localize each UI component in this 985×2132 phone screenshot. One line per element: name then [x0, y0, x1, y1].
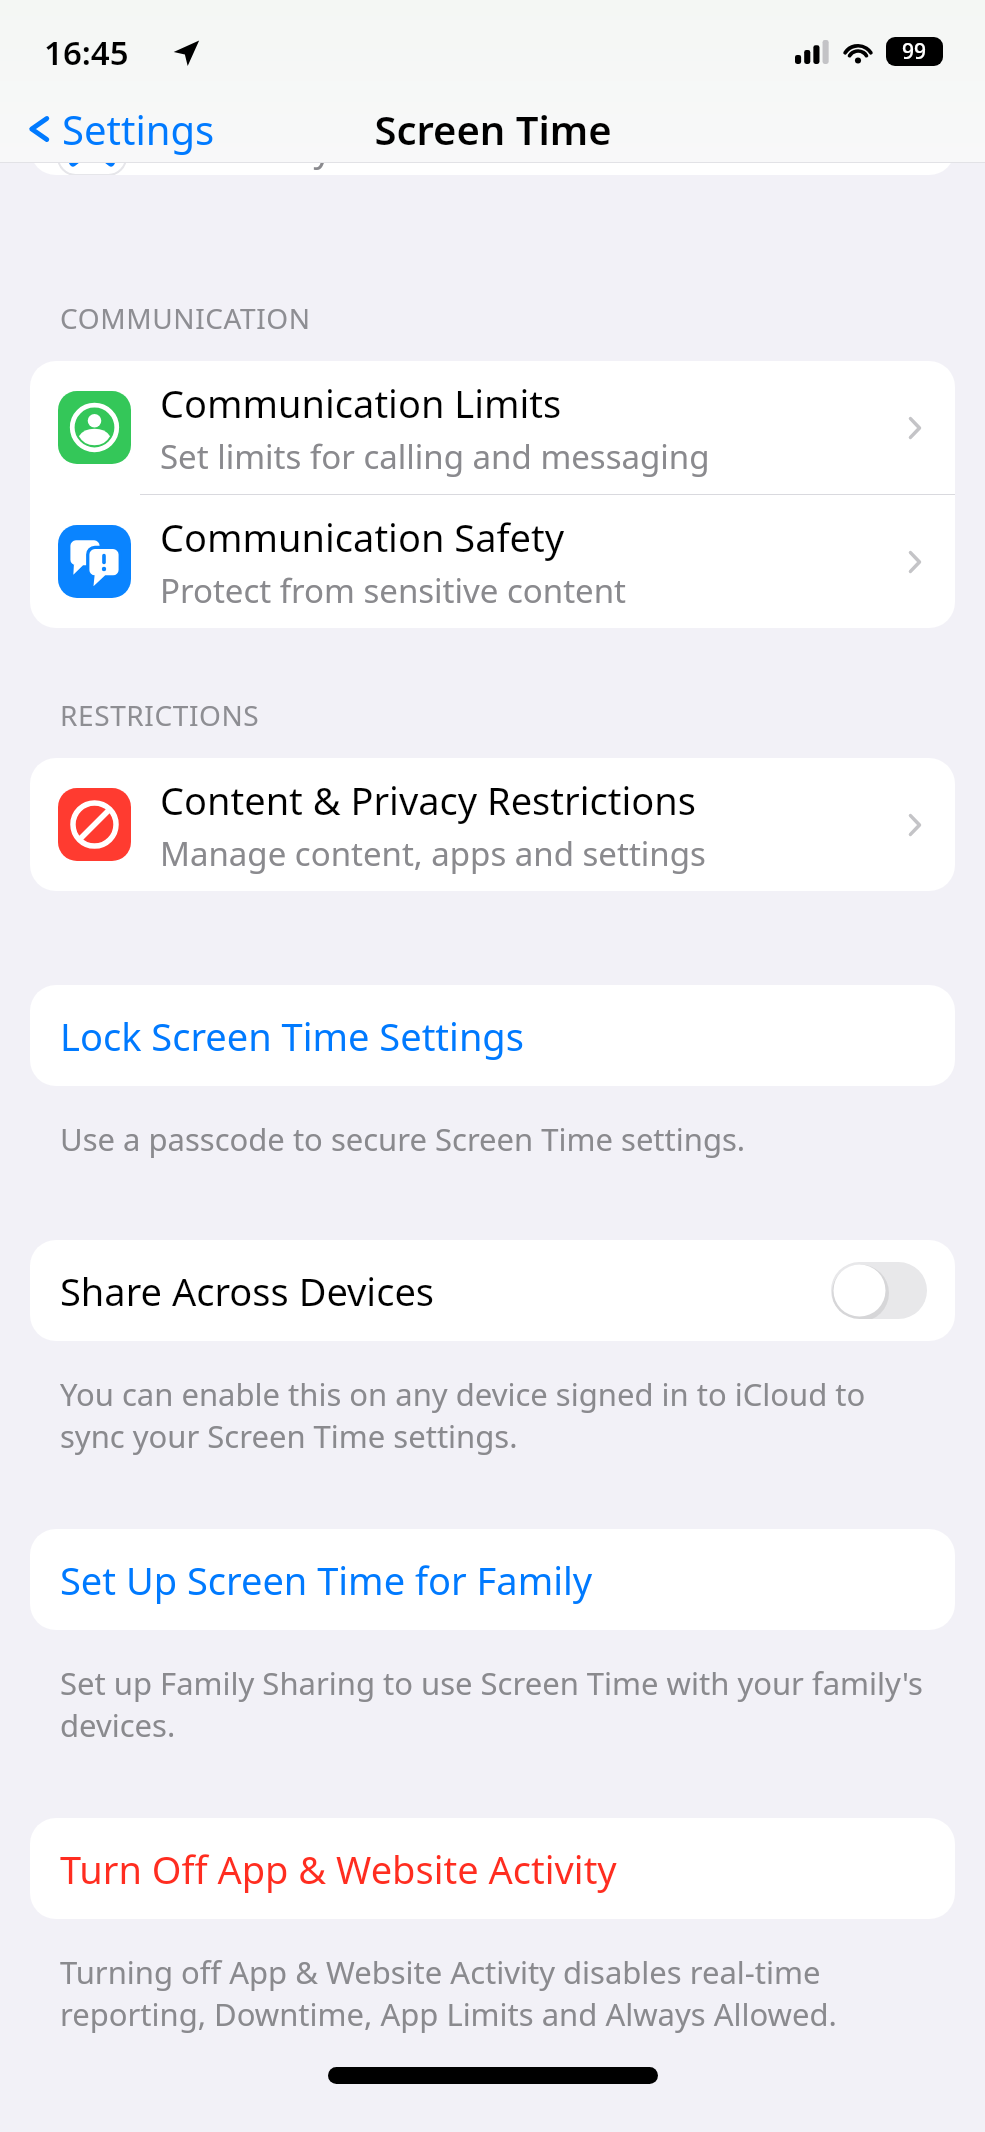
button[interactable]: Set Up Screen Time for Family: [30, 1529, 955, 1630]
button[interactable]: Settings: [18, 96, 223, 162]
staticText: 99: [902, 37, 927, 66]
staticText: Turning off App & Website Activity disab…: [60, 1951, 930, 2035]
staticText: Manage content, apps and settings: [160, 831, 706, 876]
button[interactable]: Lock Screen Time Settings: [30, 985, 955, 1086]
button[interactable]: Content & Privacy Restrictions: [30, 758, 955, 891]
button[interactable]: Reduce eye strain: [30, 107, 955, 175]
other: Home indicator: [328, 2067, 658, 2084]
staticText: Share Across Devices: [60, 1265, 435, 1317]
staticText: Communication Limits: [160, 377, 562, 429]
staticText: Lock Screen Time Settings: [60, 1010, 524, 1062]
staticText: Protect from sensitive content: [160, 568, 627, 613]
staticText: Reduce eye strain: [160, 123, 458, 172]
staticText: Set Up Screen Time for Family: [60, 1554, 593, 1606]
staticText: Turn Off App & Website Activity: [60, 1843, 617, 1895]
button[interactable]: Communication Limits: [30, 361, 955, 494]
staticText: RESTRICTIONS: [60, 696, 260, 734]
staticText: Settings: [62, 102, 215, 156]
staticText: Content & Privacy Restrictions: [160, 774, 696, 826]
staticText: You can enable this on any device signed…: [60, 1373, 930, 1457]
staticText: Screen Time: [374, 102, 612, 156]
staticText: Communication Safety: [160, 511, 565, 563]
button[interactable]: Turn Off App & Website Activity: [30, 1818, 955, 1919]
staticText: Use a passcode to secure Screen Time set…: [60, 1118, 746, 1160]
staticText: 16:45: [44, 30, 129, 75]
staticText: COMMUNICATION: [60, 299, 311, 337]
button[interactable]: Share Across Devices: [30, 1240, 955, 1341]
staticText: Set limits for calling and messaging: [160, 434, 710, 479]
button[interactable]: Communication Safety: [30, 494, 955, 628]
staticText: Set up Family Sharing to use Screen Time…: [60, 1662, 930, 1746]
